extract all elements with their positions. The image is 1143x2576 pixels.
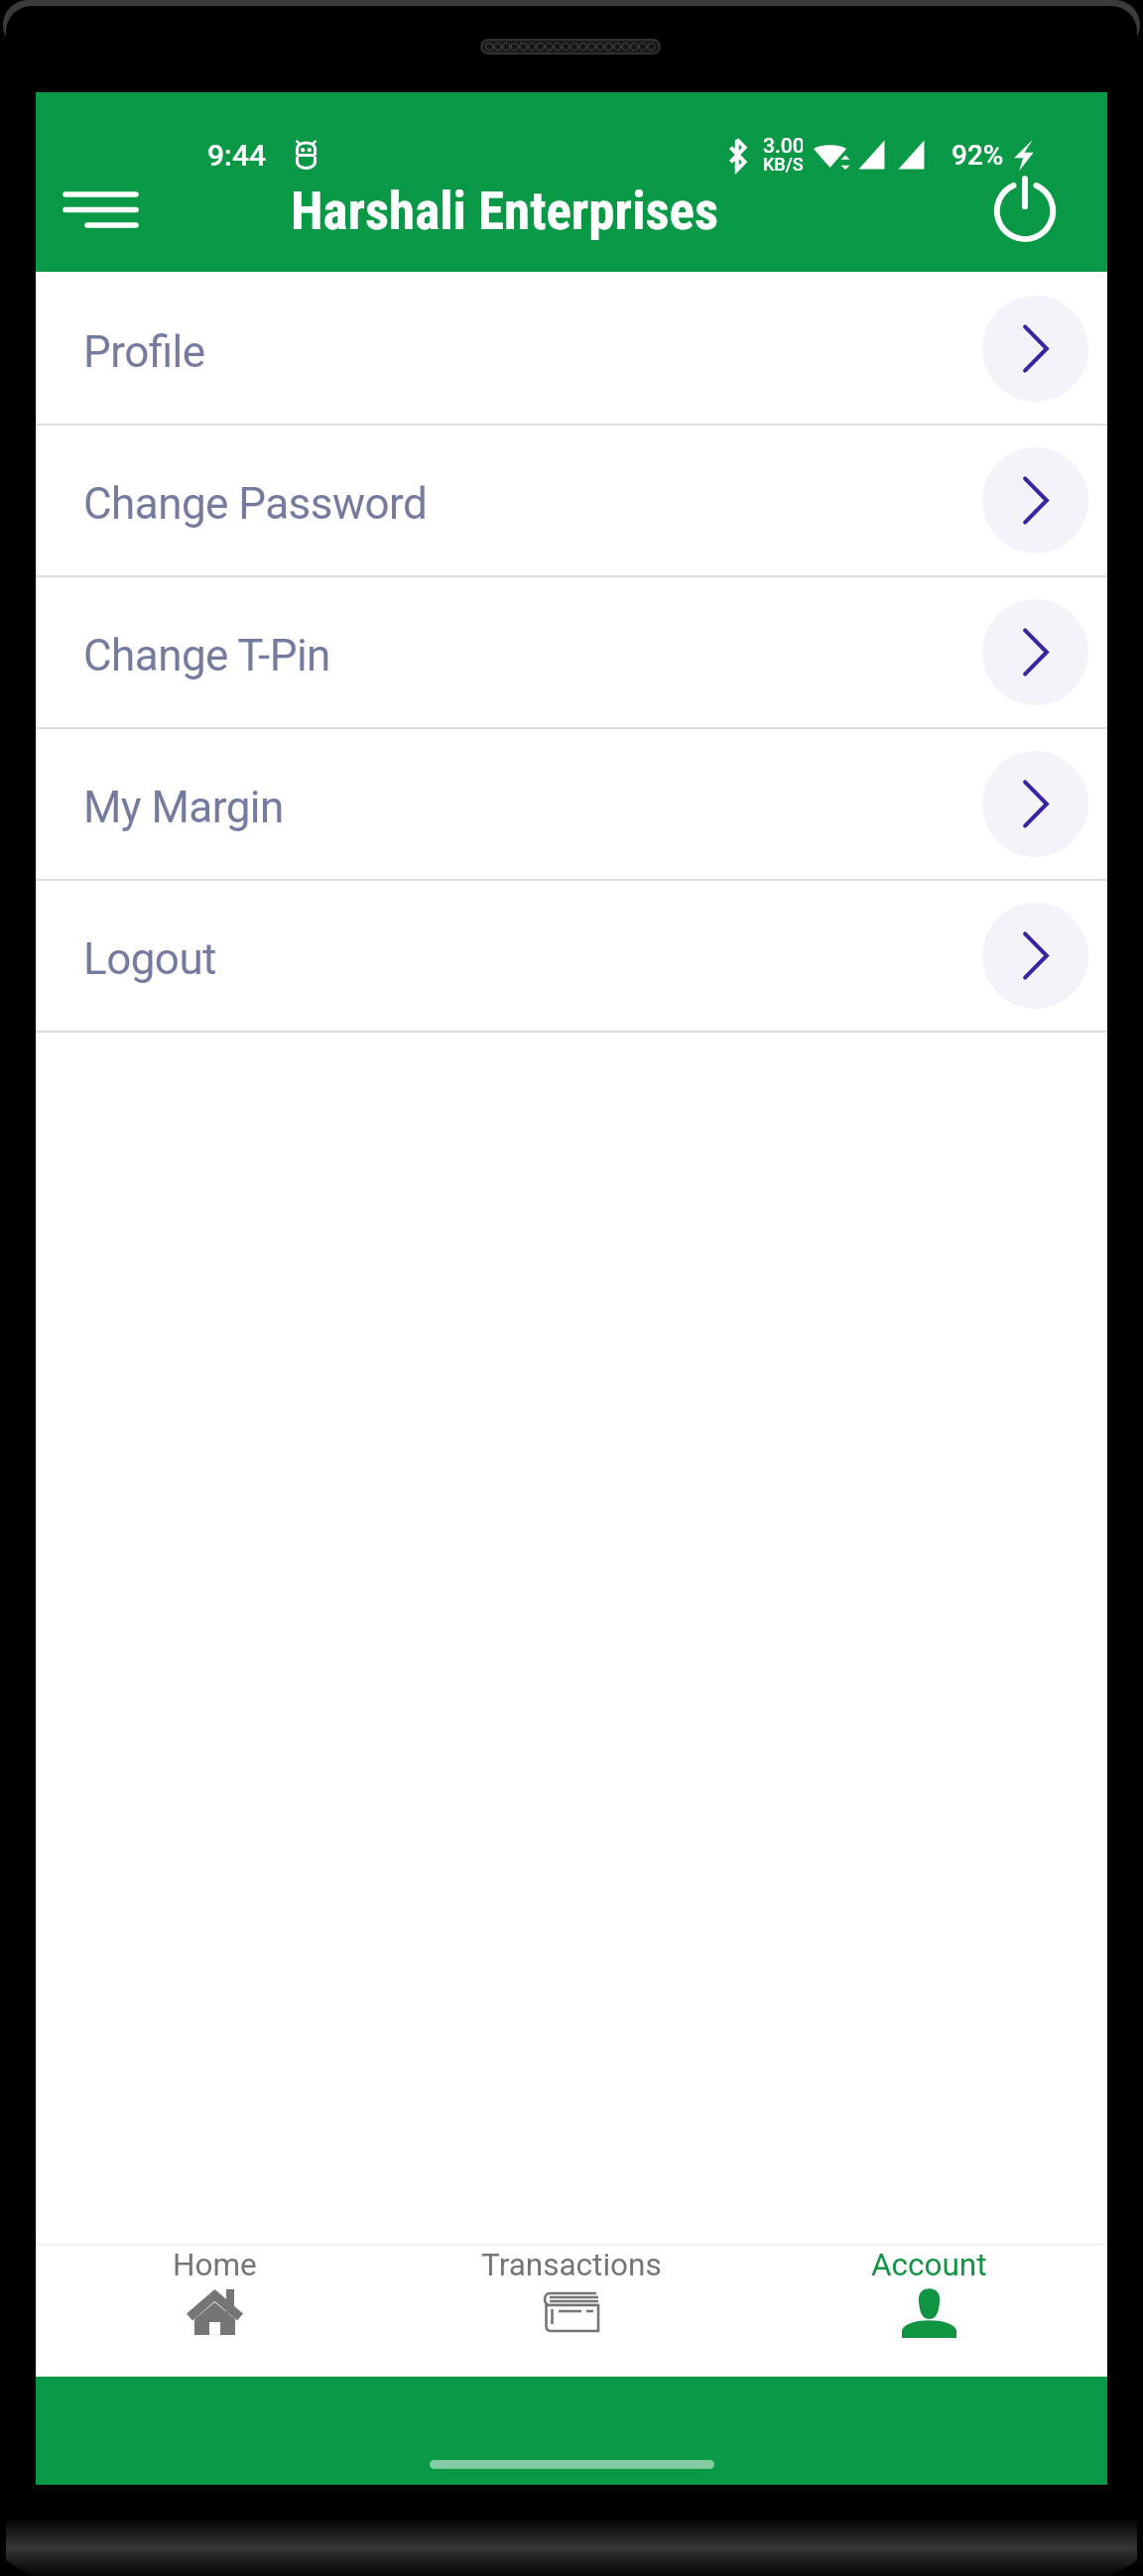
staticText: 3.00 [763,134,803,159]
button[interactable]: Logout [36,881,1107,1031]
staticText: KB/S [763,154,803,175]
button[interactable]: Logout [980,164,1070,253]
staticText: Account [871,2247,987,2283]
staticText: Change T-Pin [83,630,330,681]
staticText: Profile [83,326,205,378]
staticText: Logout [83,933,216,985]
button[interactable]: Change Password [36,426,1107,575]
button[interactable]: My Margin [36,729,1107,879]
button[interactable]: Change T-Pin [36,577,1107,727]
staticText: Home [173,2247,257,2283]
staticText: 92% [952,139,1004,172]
button[interactable]: Open navigation menu [57,166,144,253]
staticText: 9:44 [207,138,267,173]
staticText: My Margin [83,782,284,833]
button[interactable]: Transactions [393,2246,750,2377]
button[interactable]: Home [36,2246,393,2377]
button[interactable]: Profile [36,274,1107,424]
staticText: Transactions [481,2247,662,2283]
staticText: Change Password [83,478,428,530]
button[interactable]: Account [750,2246,1107,2377]
staticText: Harshali Enterprises [291,181,718,242]
